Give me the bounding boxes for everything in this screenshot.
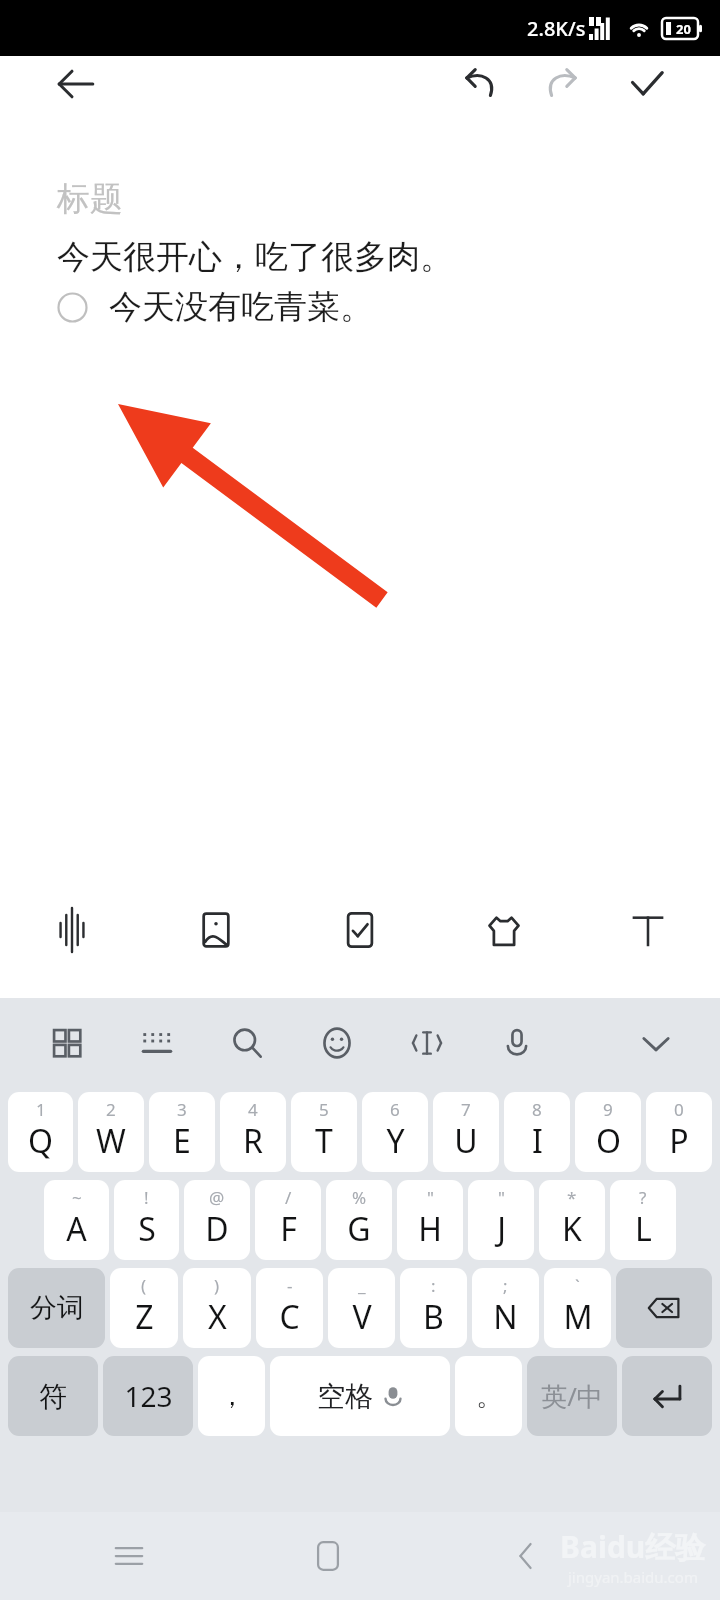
- staticText: Baidu经验: [560, 1526, 706, 1567]
- staticText: ;: [503, 1274, 508, 1297]
- staticText: V: [352, 1295, 372, 1339]
- button[interactable]: Style: [432, 880, 576, 980]
- button[interactable]: %: [326, 1180, 392, 1260]
- button[interactable]: Enter: [622, 1356, 712, 1436]
- staticText: _: [358, 1274, 366, 1297]
- staticText: @: [209, 1186, 225, 1209]
- button[interactable]: Image: [144, 880, 288, 980]
- staticText: 3: [177, 1098, 187, 1121]
- staticText: K: [562, 1207, 582, 1251]
- button[interactable]: Cursor: [382, 1008, 472, 1078]
- button[interactable]: ~: [44, 1180, 109, 1260]
- button[interactable]: ": [397, 1180, 463, 1260]
- staticText: 。: [476, 1380, 502, 1413]
- staticText: N: [493, 1295, 518, 1339]
- button[interactable]: 符: [8, 1356, 98, 1436]
- button[interactable]: -: [256, 1268, 323, 1348]
- button[interactable]: @: [184, 1180, 250, 1260]
- staticText: D: [205, 1207, 229, 1251]
- button[interactable]: Backspace: [616, 1268, 712, 1348]
- button[interactable]: `: [544, 1268, 611, 1348]
- staticText: 标题: [57, 178, 123, 220]
- button[interactable]: Back: [479, 1512, 575, 1600]
- button[interactable]: ): [183, 1268, 251, 1348]
- button[interactable]: 5: [291, 1092, 357, 1172]
- staticText: 符: [39, 1379, 67, 1414]
- button[interactable]: Keyboard layout: [112, 1008, 202, 1078]
- staticText: /: [285, 1186, 292, 1209]
- button[interactable]: (: [110, 1268, 178, 1348]
- staticText: B: [423, 1295, 444, 1339]
- staticText: %: [352, 1186, 367, 1209]
- button[interactable]: 4: [220, 1092, 286, 1172]
- staticText: 今天没有吃青菜。: [109, 286, 373, 328]
- staticText: jingyan.baidu.com: [568, 1567, 698, 1587]
- button[interactable]: 6: [362, 1092, 428, 1172]
- staticText: (: [141, 1274, 147, 1297]
- button[interactable]: 。: [455, 1356, 522, 1436]
- button[interactable]: 123: [103, 1356, 193, 1436]
- staticText: H: [418, 1207, 442, 1251]
- staticText: S: [138, 1207, 156, 1251]
- staticText: J: [497, 1207, 506, 1251]
- button[interactable]: 1: [8, 1092, 73, 1172]
- button[interactable]: ，: [198, 1356, 265, 1436]
- staticText: U: [454, 1119, 478, 1163]
- staticText: Y: [386, 1119, 405, 1163]
- button[interactable]: Redo: [532, 56, 594, 112]
- button[interactable]: Voice: [0, 880, 144, 980]
- staticText: P: [669, 1119, 689, 1163]
- staticText: 2: [106, 1098, 116, 1121]
- staticText: Z: [135, 1295, 154, 1339]
- button[interactable]: Todo: [288, 880, 432, 980]
- button[interactable]: 9: [575, 1092, 641, 1172]
- button[interactable]: :: [400, 1268, 467, 1348]
- staticText: R: [243, 1119, 263, 1163]
- button[interactable]: Home: [280, 1512, 376, 1600]
- staticText: O: [596, 1119, 621, 1163]
- button[interactable]: Back: [40, 56, 112, 112]
- button[interactable]: 分词: [8, 1268, 105, 1348]
- staticText: X: [208, 1295, 227, 1339]
- button[interactable]: Panels: [22, 1008, 112, 1078]
- staticText: ?: [639, 1186, 647, 1209]
- staticText: T: [315, 1119, 333, 1163]
- button[interactable]: Menu: [81, 1512, 177, 1600]
- button[interactable]: /: [255, 1180, 321, 1260]
- button[interactable]: ;: [472, 1268, 539, 1348]
- staticText: A: [66, 1207, 87, 1251]
- button[interactable]: 空格: [270, 1356, 450, 1436]
- staticText: 0: [674, 1098, 684, 1121]
- button[interactable]: 0: [646, 1092, 712, 1172]
- button[interactable]: 2: [78, 1092, 144, 1172]
- staticText: M: [563, 1295, 593, 1339]
- staticText: ": [427, 1186, 434, 1209]
- staticText: F: [280, 1207, 297, 1251]
- button[interactable]: Text format: [576, 880, 720, 980]
- button[interactable]: Search: [202, 1008, 292, 1078]
- button[interactable]: 3: [149, 1092, 215, 1172]
- button[interactable]: _: [328, 1268, 395, 1348]
- button[interactable]: ": [468, 1180, 534, 1260]
- staticText: 5: [319, 1098, 329, 1121]
- staticText: G: [347, 1207, 371, 1251]
- staticText: I: [532, 1119, 543, 1163]
- staticText: C: [279, 1295, 300, 1339]
- staticText: ": [498, 1186, 505, 1209]
- button[interactable]: 英/中: [527, 1356, 617, 1436]
- staticText: -: [287, 1274, 293, 1297]
- button[interactable]: Voice input: [472, 1008, 562, 1078]
- button[interactable]: 8: [504, 1092, 570, 1172]
- button[interactable]: ?: [610, 1180, 676, 1260]
- button[interactable]: Done: [616, 56, 678, 112]
- button[interactable]: 7: [433, 1092, 499, 1172]
- staticText: 123: [124, 1377, 173, 1415]
- button[interactable]: !: [114, 1180, 179, 1260]
- staticText: *: [567, 1186, 577, 1209]
- staticText: 7: [461, 1098, 471, 1121]
- staticText: !: [144, 1186, 149, 1209]
- button[interactable]: Emoji: [292, 1008, 382, 1078]
- button[interactable]: *: [539, 1180, 605, 1260]
- button[interactable]: Undo: [448, 56, 510, 112]
- button[interactable]: Hide keyboard: [618, 1005, 694, 1081]
